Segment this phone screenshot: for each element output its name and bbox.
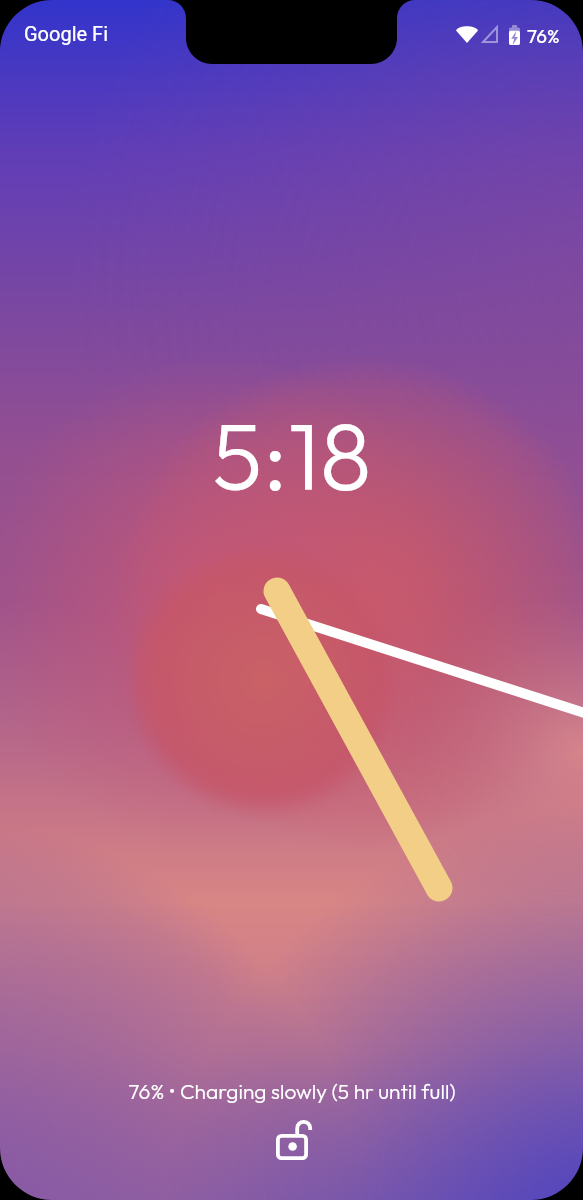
staticText: Google Fi — [24, 22, 109, 45]
button[interactable]: Unlock — [267, 1113, 321, 1167]
staticText: 76% • Charging slowly (5 hr until full) — [128, 1078, 456, 1104]
staticText: 76% — [527, 24, 560, 48]
staticText: 5:18 — [212, 396, 372, 514]
